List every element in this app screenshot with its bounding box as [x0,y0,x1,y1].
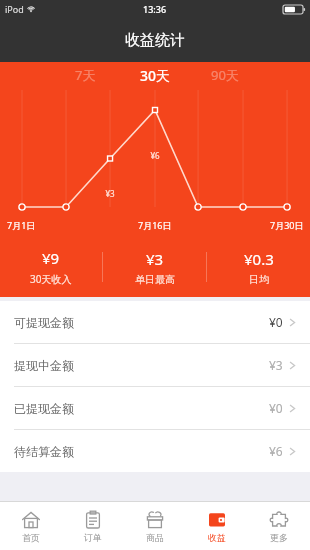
staticText: 单日最高 [135,273,175,286]
staticText: 收益统计 [125,31,185,50]
button[interactable]: 收益 [186,502,248,550]
button[interactable]: 已提现金额 [0,387,310,429]
button[interactable]: ¥3 [103,237,206,297]
staticText: 7月30日 [270,219,304,231]
button[interactable]: 更多 [248,502,310,550]
staticText: 日均 [249,273,269,286]
button[interactable]: 可提现金额 [0,301,310,343]
staticText: ¥0 [269,400,283,416]
button[interactable]: 30天 [120,62,190,88]
staticText: 7天 [75,66,96,84]
staticText: 7月1日 [7,219,36,231]
button[interactable]: ¥0.3 [207,237,310,297]
staticText: ¥9 [42,248,60,268]
staticText: 商品 [146,532,164,543]
staticText: ¥0 [269,314,283,330]
staticText: ¥3 [269,357,283,373]
staticText: 7月16日 [138,219,172,231]
staticText: 提现中金额 [14,358,74,373]
staticText: 更多 [270,532,288,543]
staticText: 待结算金额 [14,444,74,459]
staticText: ¥3 [146,249,164,269]
button[interactable]: 7天 [50,62,120,88]
staticText: 首页 [22,532,40,543]
staticText: 13:36 [143,3,167,15]
button[interactable]: 商品 [124,502,186,550]
staticText: 收益 [208,532,226,543]
staticText: ¥6 [269,443,283,459]
staticText: 90天 [211,66,239,84]
button[interactable]: 90天 [190,62,260,88]
button[interactable]: 待结算金额 [0,430,310,472]
staticText: ¥0.3 [244,249,274,269]
button[interactable]: 首页 [0,502,62,550]
staticText: 可提现金额 [14,315,74,330]
button[interactable]: 订单 [62,502,124,550]
button[interactable]: ¥9 [0,237,102,297]
button[interactable]: 提现中金额 [0,344,310,386]
staticText: iPod [5,3,24,15]
staticText: ¥0 [238,245,248,256]
staticText: 已提现金额 [14,401,74,416]
staticText: 30天 [140,66,171,85]
staticText: ¥6 [150,150,160,161]
staticText: 30天收入 [30,272,72,286]
staticText: ¥3 [105,188,115,199]
staticText: 订单 [84,532,102,543]
